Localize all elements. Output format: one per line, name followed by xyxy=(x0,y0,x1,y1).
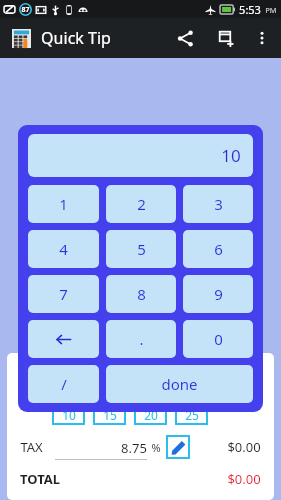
staticText: 7 xyxy=(59,284,68,304)
button[interactable]: 8 xyxy=(106,275,176,313)
button[interactable]: 25 xyxy=(175,405,208,425)
staticText: $0.00 xyxy=(227,438,261,456)
button[interactable]: 2 xyxy=(106,185,176,223)
button[interactable]: . xyxy=(106,320,176,358)
button[interactable]: Backspace xyxy=(28,320,99,358)
button[interactable]: 0 xyxy=(183,320,253,358)
staticText: Quick Tip xyxy=(41,27,111,49)
button[interactable]: 4 xyxy=(28,230,99,268)
staticText: . xyxy=(139,329,144,349)
button[interactable]: 7 xyxy=(28,275,99,313)
button[interactable]: / xyxy=(28,365,99,403)
staticText: 20 xyxy=(144,407,158,423)
staticText: 10 xyxy=(221,144,241,167)
button[interactable]: 10 xyxy=(52,405,85,425)
staticText: 0 xyxy=(214,329,223,349)
staticText: 4 xyxy=(59,239,68,259)
button[interactable]: done xyxy=(106,365,253,403)
button[interactable]: 10 xyxy=(28,134,253,177)
staticText: 87 xyxy=(21,5,30,15)
staticText: 8.75 xyxy=(121,439,147,457)
button[interactable]: 20 xyxy=(134,405,167,425)
staticText: 2 xyxy=(137,194,146,214)
staticText: 25 xyxy=(185,407,199,423)
staticText: TOTAL xyxy=(20,470,60,488)
button[interactable]: 6 xyxy=(183,230,253,268)
button[interactable]: Edit tax xyxy=(166,435,190,459)
staticText: 6 xyxy=(214,239,223,259)
staticText: 9 xyxy=(214,284,223,304)
staticText: 8 xyxy=(137,284,146,304)
button[interactable]: 15 xyxy=(93,405,126,425)
staticText: % xyxy=(151,440,161,455)
staticText: PM xyxy=(265,5,277,15)
staticText: $0.00 xyxy=(227,470,261,488)
button[interactable]: New tab xyxy=(205,18,245,58)
button[interactable]: 3 xyxy=(183,185,253,223)
button[interactable]: 5 xyxy=(106,230,176,268)
staticText: 5 xyxy=(137,239,146,259)
staticText: 3 xyxy=(214,194,223,214)
staticText: TAX xyxy=(20,438,43,456)
button[interactable]: Share xyxy=(165,18,205,58)
staticText: 10 xyxy=(62,407,76,423)
staticText: / xyxy=(61,374,67,394)
staticText: 15 xyxy=(103,407,117,423)
button[interactable]: 1 xyxy=(28,185,99,223)
staticText: done xyxy=(161,374,198,394)
button[interactable]: 8.75 xyxy=(43,434,147,460)
staticText: S xyxy=(17,363,25,381)
staticText: 1 xyxy=(59,194,68,214)
staticText: 0 xyxy=(256,363,264,381)
button[interactable]: 9 xyxy=(183,275,253,313)
staticText: 5:53 xyxy=(239,2,261,17)
button[interactable]: More options xyxy=(245,21,279,55)
